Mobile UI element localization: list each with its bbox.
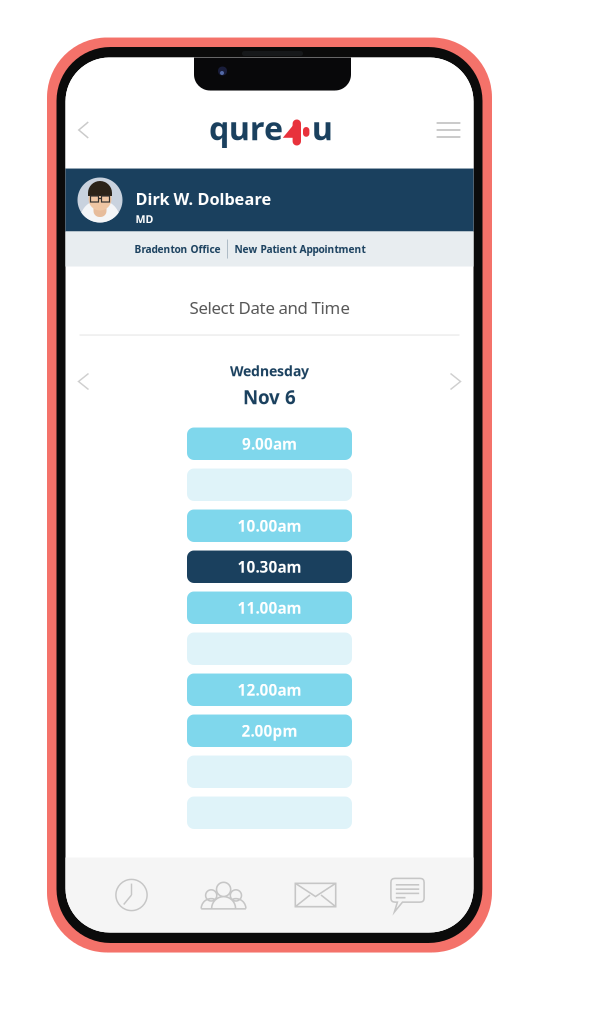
- button[interactable]: New Patient Appointment: [234, 242, 365, 256]
- button[interactable]: Care team: [177, 857, 269, 932]
- staticText: New Patient Appointment: [234, 242, 365, 256]
- button[interactable]: Previous day: [65, 359, 101, 403]
- staticText: qure: [209, 106, 283, 150]
- button[interactable]: Menu: [430, 108, 466, 152]
- button[interactable]: Next day: [437, 359, 473, 403]
- staticText: u: [312, 106, 333, 150]
- button[interactable]: 10.00am: [187, 509, 352, 542]
- button[interactable]: 11.00am: [187, 591, 352, 624]
- staticText: 9.00am: [242, 433, 297, 454]
- button[interactable]: [187, 796, 352, 829]
- staticText: Dirk W. Dolbeare: [135, 188, 271, 210]
- staticText: Select Date and Time: [189, 296, 349, 319]
- staticText: 2.00pm: [241, 720, 297, 741]
- button[interactable]: [187, 468, 352, 501]
- staticText: MD: [135, 212, 153, 226]
- staticText: Wednesday: [230, 361, 309, 380]
- staticText: 10.00am: [237, 515, 301, 536]
- button[interactable]: Chat: [361, 857, 453, 932]
- staticText: Nov 6: [243, 384, 296, 410]
- staticText: 11.00am: [237, 597, 301, 618]
- button[interactable]: Bradenton Office: [134, 242, 220, 256]
- button[interactable]: [187, 632, 352, 665]
- button[interactable]: 10.30am: [187, 550, 352, 583]
- button[interactable]: 9.00am: [187, 427, 352, 460]
- button[interactable]: Back: [65, 108, 101, 152]
- button[interactable]: 2.00pm: [187, 714, 352, 747]
- staticText: Bradenton Office: [134, 242, 220, 256]
- button[interactable]: Messages: [269, 857, 361, 932]
- button[interactable]: 12.00am: [187, 673, 352, 706]
- staticText: 10.30am: [237, 556, 301, 577]
- staticText: 12.00am: [237, 679, 301, 700]
- button[interactable]: Schedule: [85, 857, 177, 932]
